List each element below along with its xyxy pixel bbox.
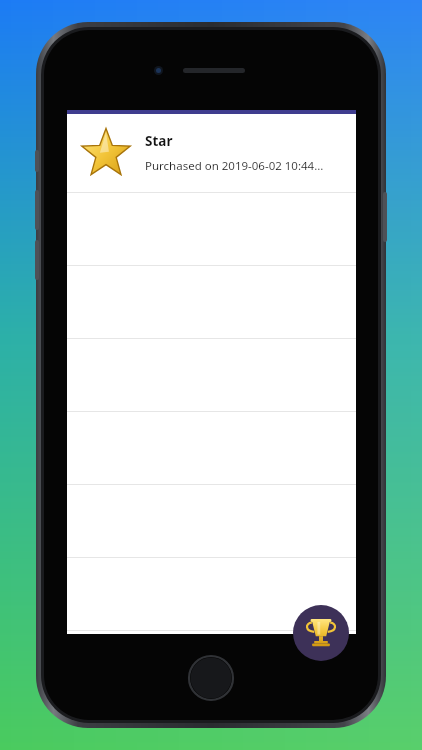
button[interactable]: Achievements — [293, 605, 349, 661]
button[interactable] — [67, 558, 356, 631]
button[interactable]: Star — [67, 114, 356, 193]
staticText: Purchased on 2019-06-02 10:44… — [145, 158, 324, 174]
staticText: Star — [145, 132, 173, 150]
